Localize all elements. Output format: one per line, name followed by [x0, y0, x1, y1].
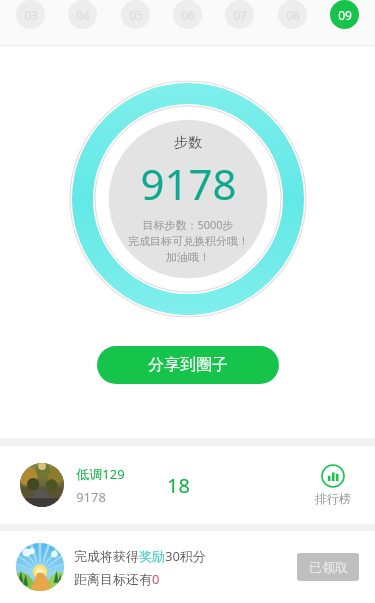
staticText: 完成目标可兑换积分哦！ — [128, 234, 249, 248]
button[interactable]: 05 — [121, 0, 150, 29]
staticText: 05 — [129, 7, 143, 23]
staticText: 03 — [24, 7, 38, 23]
staticText: 步数 — [174, 134, 202, 152]
staticText: 完成将获得奖励30积分 — [74, 547, 206, 565]
staticText: 07 — [233, 7, 247, 23]
staticText: 06 — [181, 7, 195, 23]
staticText: 9178 — [140, 155, 237, 212]
button[interactable]: 06 — [173, 0, 202, 29]
staticText: 排行榜 — [315, 491, 351, 506]
button[interactable]: 09 — [330, 0, 359, 29]
button[interactable]: 低调129 — [0, 446, 375, 524]
staticText: 分享到圈子 — [148, 355, 228, 375]
button[interactable]: 08 — [278, 0, 307, 29]
button[interactable]: 分享到圈子 — [97, 346, 279, 384]
staticText: 已领取 — [309, 559, 348, 575]
staticText: 目标步数：5000步 — [142, 217, 234, 232]
staticText: 9178 — [76, 488, 106, 506]
button[interactable]: 07 — [225, 0, 254, 29]
staticText: 09 — [338, 7, 352, 23]
staticText: 18 — [167, 472, 190, 499]
staticText: 加油哦！ — [166, 250, 210, 264]
staticText: 08 — [286, 7, 300, 23]
button[interactable]: 排行榜 — [311, 460, 355, 510]
staticText: 04 — [76, 7, 90, 23]
staticText: 距离目标还有0 — [74, 570, 160, 588]
button[interactable]: 04 — [68, 0, 97, 29]
button[interactable]: 已领取 — [297, 553, 359, 581]
staticText: 低调129 — [76, 465, 125, 483]
button[interactable]: 03 — [16, 0, 45, 29]
